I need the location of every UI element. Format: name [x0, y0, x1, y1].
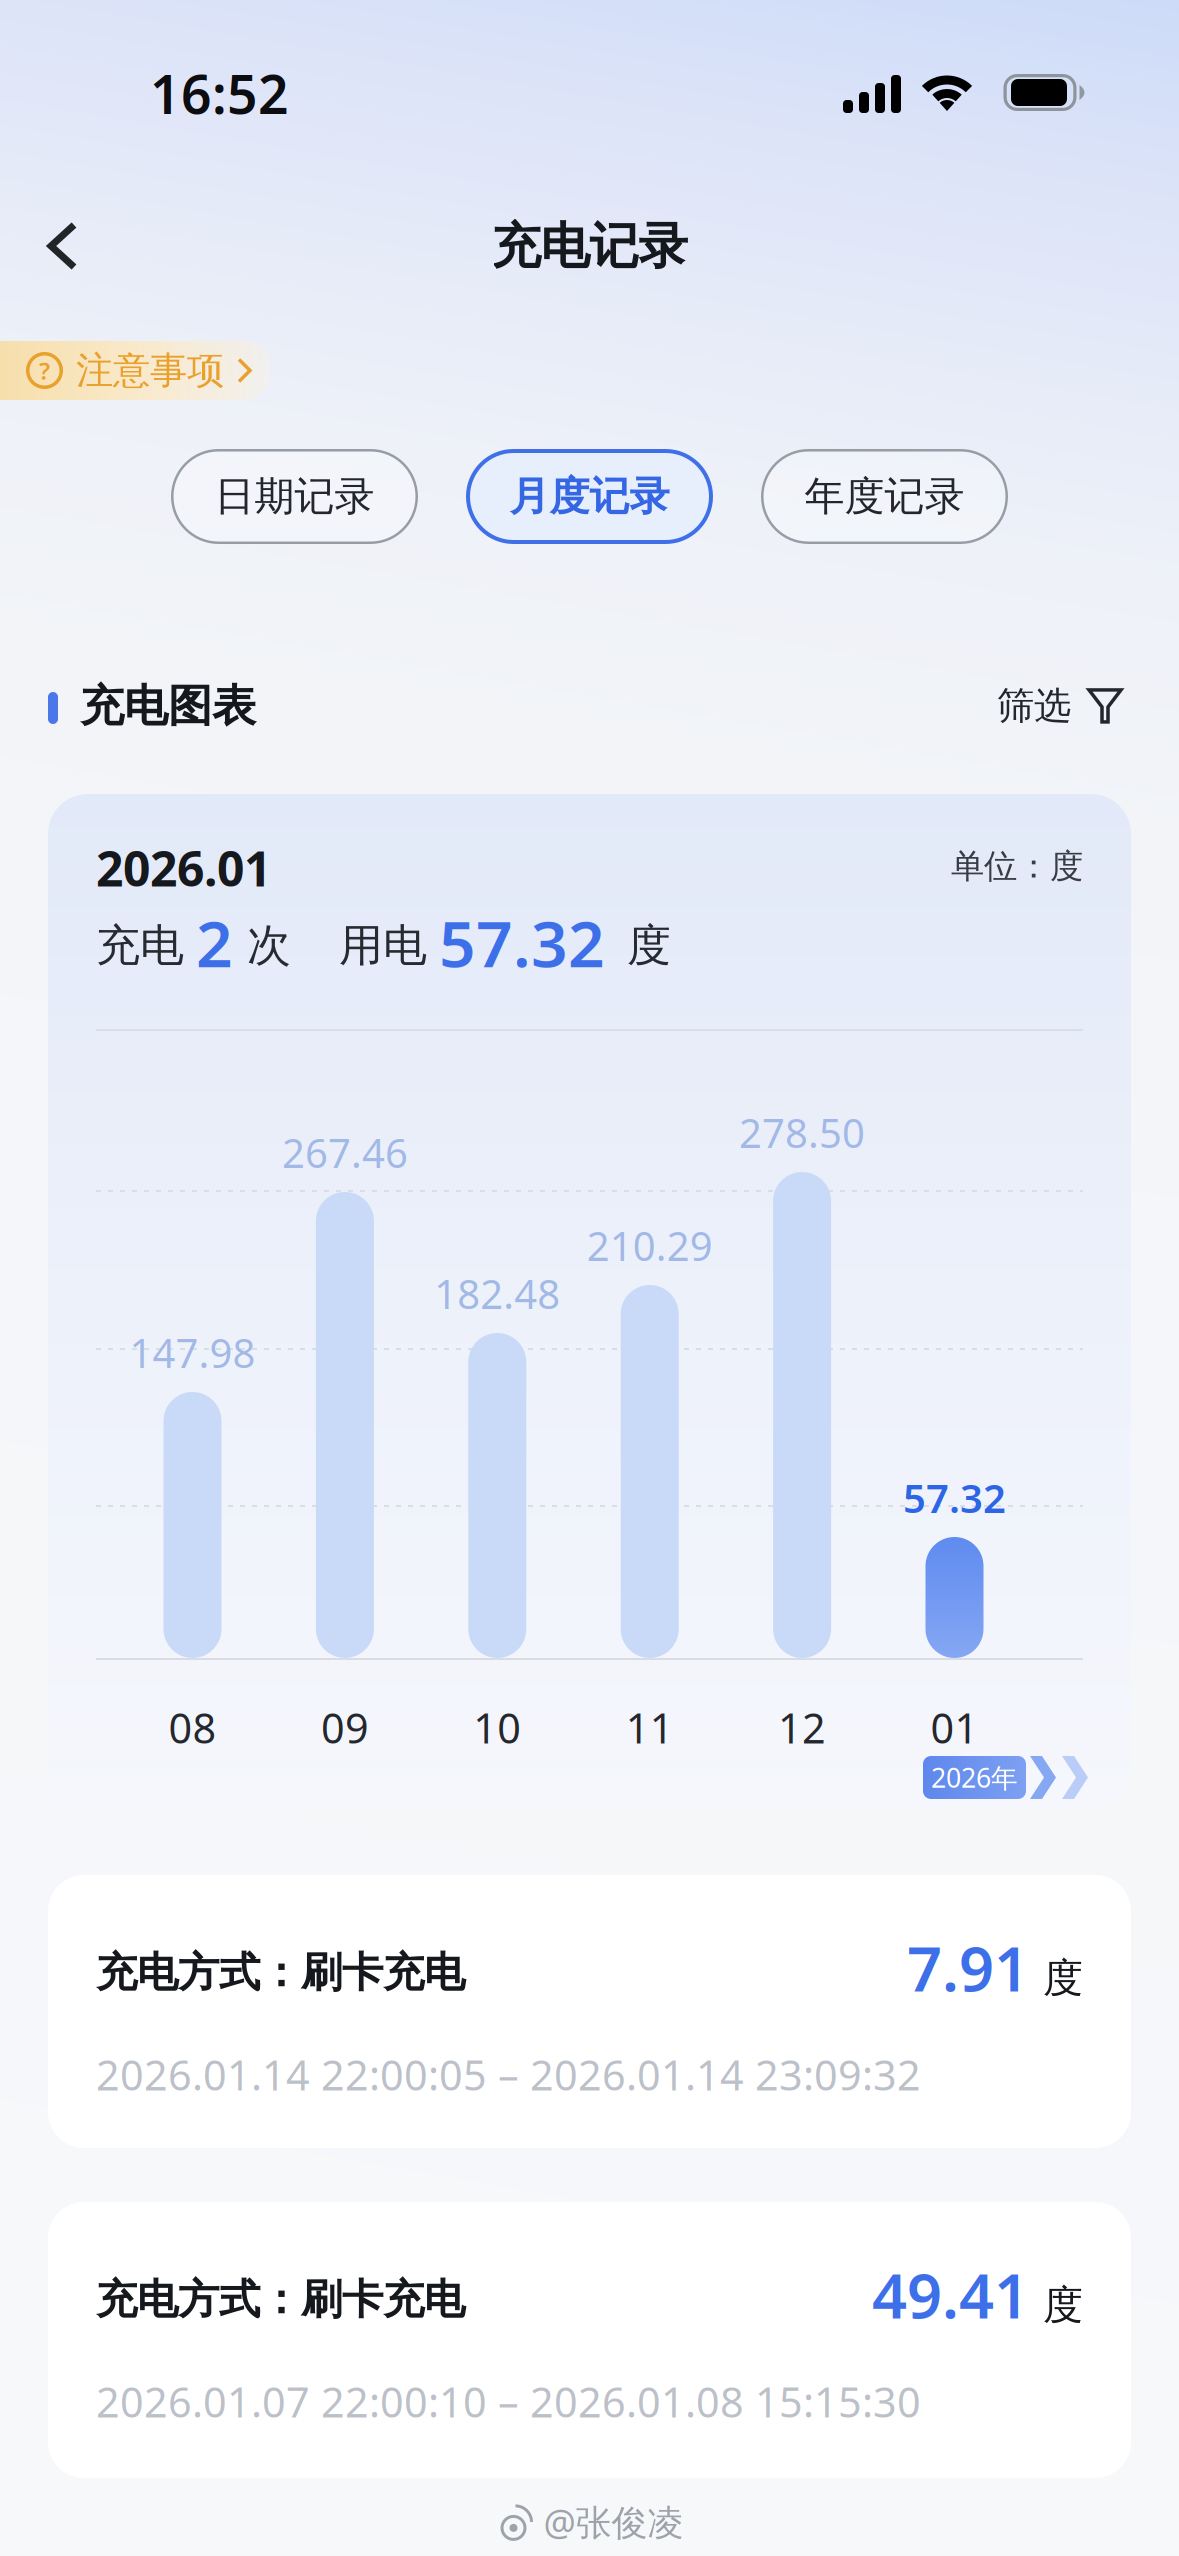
staticText: 2 [196, 900, 233, 985]
staticText: 充电图表 [80, 679, 256, 733]
staticText: 2026年 [931, 1760, 1018, 1795]
staticText: 12 [778, 1700, 826, 1755]
staticText: 147.98 [129, 1326, 255, 1379]
staticText: 16:52 [150, 58, 289, 129]
staticText: 57.32 [439, 900, 605, 985]
staticText: 09 [321, 1700, 369, 1755]
staticText: 7.91 [907, 1927, 1029, 2008]
staticText: 08 [168, 1700, 216, 1755]
staticText: 月度记录 [509, 472, 669, 521]
button[interactable]: 充电方式：刷卡充电 [48, 1875, 1131, 2148]
staticText: 210.29 [587, 1219, 713, 1272]
staticText: 11 [626, 1700, 674, 1755]
staticText: 57.32 [903, 1471, 1006, 1524]
staticText: 用电 [339, 919, 427, 973]
button[interactable]: 日期记录 [171, 449, 418, 544]
staticText: 充电记录 [491, 216, 687, 277]
staticText: 2026.01.07 22:00:10 – 2026.01.08 15:15:3… [96, 2374, 921, 2429]
staticText: 充电方式：刷卡充电 [96, 2274, 465, 2325]
staticText: 次 [247, 919, 291, 973]
button[interactable]: 年度记录 [761, 449, 1008, 544]
staticText: ? [39, 355, 50, 386]
staticText: 278.50 [739, 1106, 865, 1159]
staticText: 单位：度 [951, 846, 1083, 887]
button[interactable]: 充电方式：刷卡充电 [48, 2202, 1131, 2478]
staticText: 注意事项 [76, 348, 224, 393]
staticText: 度 [1043, 1954, 1083, 2003]
staticText: 182.48 [434, 1267, 560, 1320]
staticText: 2026.01.14 22:00:05 – 2026.01.14 23:09:3… [96, 2047, 921, 2102]
button[interactable]: 筛选 [997, 683, 1123, 729]
staticText: 充电 [96, 919, 184, 973]
staticText: 49.41 [872, 2254, 1029, 2335]
button[interactable]: 返回 [48, 223, 78, 269]
button[interactable]: ? [0, 341, 270, 400]
staticText: 充电方式：刷卡充电 [96, 1947, 465, 1998]
staticText: 267.46 [282, 1126, 408, 1179]
staticText: @张俊凌 [543, 2498, 683, 2546]
staticText: 日期记录 [214, 472, 374, 521]
staticText: 度 [1043, 2281, 1083, 2330]
staticText: 10 [473, 1700, 521, 1755]
staticText: 度 [627, 919, 671, 973]
staticText: 筛选 [997, 683, 1071, 729]
button[interactable]: 月度记录 [466, 449, 713, 544]
staticText: 年度记录 [804, 472, 964, 521]
staticText: 2026.01 [96, 836, 271, 900]
staticText: 01 [930, 1700, 978, 1755]
